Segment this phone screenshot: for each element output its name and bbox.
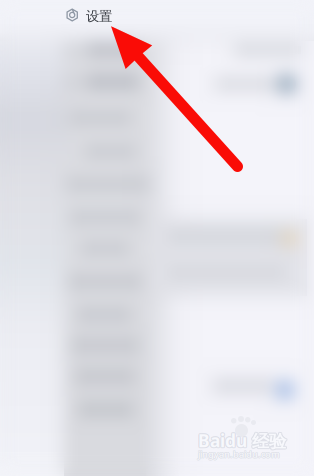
staticText: Baidu 经验 xyxy=(199,430,287,453)
staticText: jingyan.baidu.com xyxy=(199,448,281,460)
staticText: jingyan.baidu.com xyxy=(197,448,279,461)
staticText: jingyan.baidu.com xyxy=(198,448,280,461)
staticText: jingyan.baidu.com xyxy=(198,447,280,460)
staticText: jingyan.baidu.com xyxy=(197,447,279,460)
staticText: jingyan.baidu.com xyxy=(198,449,280,461)
staticText: Baidu 经验 xyxy=(197,429,285,452)
staticText: jingyan.baidu.com xyxy=(198,448,280,460)
staticText: Baidu 经验 xyxy=(197,428,285,451)
staticText: Baidu 经验 xyxy=(198,428,286,451)
staticText: Baidu 经验 xyxy=(199,429,287,452)
staticText: jingyan.baidu.com xyxy=(197,448,279,460)
button[interactable]: 设置 xyxy=(0,0,314,476)
staticText: 设置 xyxy=(86,8,112,24)
staticText: Baidu 经验 xyxy=(197,430,285,453)
staticText: jingyan.baidu.com xyxy=(198,447,280,460)
staticText: Baidu 经验 xyxy=(198,430,286,453)
staticText: Baidu 经验 xyxy=(198,429,286,452)
staticText: Baidu 经验 xyxy=(199,428,287,451)
